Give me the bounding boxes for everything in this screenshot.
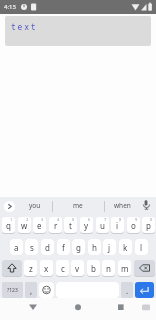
staticText: 5 [72,217,75,222]
staticText: c [61,263,65,274]
button[interactable] [52,298,104,320]
staticText: 8 [119,217,122,222]
button[interactable]: s [25,239,38,255]
button[interactable] [139,198,153,212]
staticText: 6 [88,217,91,222]
staticText: m [121,263,129,274]
button[interactable]: . [121,282,133,298]
button[interactable]: r [49,217,62,233]
staticText: h [92,242,97,253]
staticText: j [108,242,111,253]
button[interactable] [134,260,155,276]
button[interactable]: t [64,217,77,233]
staticText: v [75,263,80,274]
button[interactable]: d [41,239,54,255]
staticText: z [29,263,33,274]
button[interactable]: l [135,239,148,255]
staticText: n [106,263,111,274]
staticText: 2 [26,217,29,222]
staticText: you [29,201,41,210]
button[interactable]: you [18,197,52,213]
staticText: o [131,220,136,231]
button[interactable]: when [105,197,139,213]
staticText: d [45,242,50,253]
staticText: s [30,242,34,253]
button[interactable]: x [40,260,53,276]
button[interactable]: me [53,197,103,213]
staticText: , [30,285,33,296]
staticText: me [73,201,83,210]
button[interactable]: c [56,260,69,276]
button[interactable]: g [72,239,85,255]
button[interactable]: h [88,239,101,255]
staticText: 7 [104,217,107,222]
button[interactable]: text [5,16,151,46]
staticText: f [62,242,65,253]
button[interactable]: z [24,260,37,276]
staticText: b [91,263,96,274]
button[interactable]: v [71,260,84,276]
button[interactable]: p [142,217,155,233]
staticText: 9 [135,217,138,222]
staticText: 3 [41,217,44,222]
button[interactable]: b [87,260,100,276]
staticText: i [116,220,119,231]
button[interactable] [104,298,156,320]
staticText: k [123,242,128,253]
button[interactable]: ?123 [2,282,23,298]
staticText: l [140,242,143,253]
button[interactable]: , [25,282,37,298]
button[interactable]: f [57,239,70,255]
staticText: a [14,242,19,253]
staticText: w [21,220,28,231]
button[interactable] [2,260,22,276]
staticText: t [69,220,72,231]
staticText: 4 [57,217,60,222]
button[interactable]: m [118,260,131,276]
staticText: e [37,220,42,231]
button[interactable]: e [33,217,46,233]
button[interactable]: k [119,239,132,255]
staticText: y [84,220,89,231]
button[interactable]: j [103,239,116,255]
staticText: 0 [150,217,153,222]
button[interactable] [4,201,15,212]
button[interactable]: u [96,217,109,233]
button[interactable] [0,298,52,320]
staticText: text [11,21,38,32]
button[interactable] [135,282,154,298]
button[interactable]: i [111,217,124,233]
staticText: p [146,220,151,231]
staticText: r [54,220,58,231]
button[interactable]: o [127,217,140,233]
button[interactable]: n [102,260,115,276]
staticText: q [6,220,11,231]
button[interactable] [39,282,54,298]
staticText: when [114,201,131,210]
staticText: g [76,242,81,253]
staticText: x [44,263,49,274]
staticText: ?123 [7,287,18,294]
staticText: . [126,285,129,296]
staticText: u [100,220,105,231]
button[interactable]: q [2,217,15,233]
button[interactable]: w [18,217,31,233]
button[interactable]: y [80,217,93,233]
button[interactable]: a [10,239,23,255]
staticText: 1 [10,217,13,222]
staticText: 4:15 [4,3,16,11]
